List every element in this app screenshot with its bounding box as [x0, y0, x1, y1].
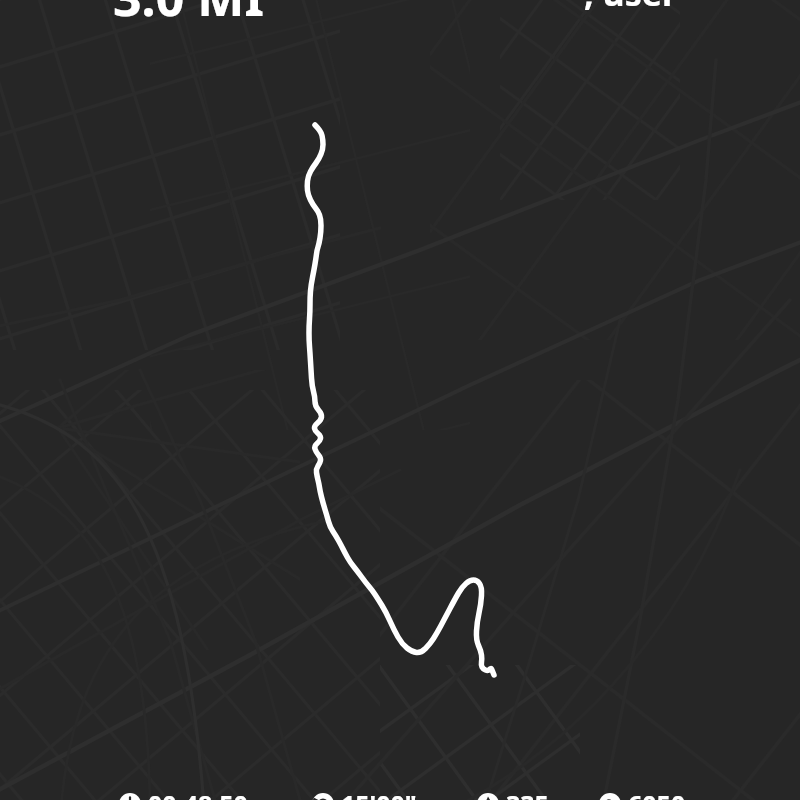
staticText: 6050	[628, 787, 686, 800]
staticText: 335	[506, 787, 549, 800]
button[interactable]: Steps 6050	[599, 787, 686, 800]
button[interactable]: Average pace 15 minutes 00 seconds per m…	[312, 787, 417, 800]
button[interactable]: Route map	[0, 0, 800, 800]
staticText: 15'00"	[341, 787, 417, 800]
button[interactable]: Duration 00:48:50	[119, 787, 248, 800]
button[interactable]: , user	[584, 0, 678, 16]
button[interactable]: 3.0 MI	[113, 0, 264, 31]
staticText: 00:48:50	[148, 787, 248, 800]
staticText: , user	[584, 0, 678, 16]
button[interactable]: Calories burned 335	[477, 787, 549, 800]
staticText: 3.0 MI	[113, 0, 264, 31]
